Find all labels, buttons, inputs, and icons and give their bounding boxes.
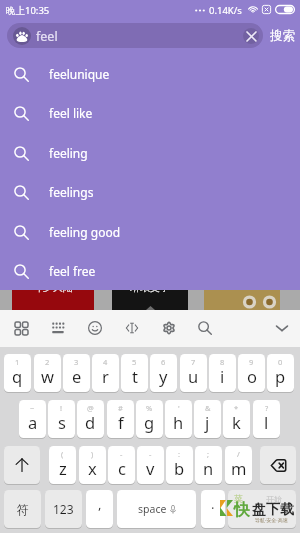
staticText: h: [173, 411, 184, 433]
staticText: 开始: [266, 494, 282, 504]
button[interactable]: 搜索: [266, 23, 298, 48]
staticText: 0.14K/s: [209, 4, 242, 17]
button[interactable]: Shift: [4, 446, 40, 484]
staticText: 斗罗大陆: [33, 281, 73, 294]
staticText: feelings: [49, 184, 94, 200]
button[interactable]: Keyboard: [44, 314, 72, 342]
button[interactable]: !: [48, 400, 75, 438]
staticText: k: [232, 411, 241, 433]
staticText: /: [237, 449, 240, 459]
button[interactable]: -: [108, 446, 135, 484]
button[interactable]: Search: [191, 314, 219, 342]
staticText: -: [149, 449, 152, 459]
button[interactable]: ): [79, 446, 106, 484]
button[interactable]: 1: [4, 354, 31, 392]
staticText: &: [205, 403, 211, 413]
staticText: d: [85, 411, 96, 433]
staticText: feeling: [49, 145, 88, 161]
staticText: 0: [278, 357, 283, 367]
staticText: 2: [45, 357, 50, 367]
button[interactable]: feeling good: [0, 212, 300, 252]
staticText: s: [58, 411, 66, 433]
staticText: f: [118, 411, 124, 433]
button[interactable]: 8: [209, 354, 236, 392]
staticText: feel like: [49, 105, 93, 121]
staticText: 9: [249, 357, 254, 367]
staticText: 盘下载: [252, 501, 294, 519]
button[interactable]: feeling: [0, 133, 300, 173]
button[interactable]: 符: [4, 490, 41, 528]
button[interactable]: feel free: [0, 251, 300, 291]
staticText: space: [138, 502, 167, 516]
staticText: l: [264, 411, 269, 433]
button[interactable]: Enter: [228, 490, 296, 528]
button[interactable]: Move cursor: [118, 314, 146, 342]
staticText: 搜索: [270, 28, 295, 44]
staticText: !: [60, 403, 63, 413]
staticText: ~: [30, 403, 35, 413]
button[interactable]: 6: [150, 354, 177, 392]
button[interactable]: 4: [92, 354, 119, 392]
button[interactable]: 3: [63, 354, 90, 392]
staticText: w: [41, 365, 54, 387]
button[interactable]: feelings: [0, 172, 300, 212]
button[interactable]: ;: [195, 446, 222, 484]
button[interactable]: Space: [117, 490, 196, 528]
button[interactable]: Hide keyboard: [268, 314, 296, 342]
staticText: -: [120, 449, 123, 459]
staticText: @: [87, 403, 94, 413]
button[interactable]: %: [136, 400, 163, 438]
staticText: p: [275, 365, 286, 387]
button[interactable]: 123: [45, 490, 82, 528]
button[interactable]: -: [137, 446, 164, 484]
staticText: 6: [161, 357, 166, 367]
staticText: 导航·安全·高速: [255, 517, 288, 524]
button[interactable]: &: [194, 400, 221, 438]
button[interactable]: *: [223, 400, 250, 438]
button[interactable]: Backspace: [260, 446, 296, 484]
button[interactable]: .: [201, 490, 225, 528]
staticText: i: [220, 365, 225, 387]
button[interactable]: :: [166, 446, 193, 484]
button[interactable]: ,: [86, 490, 113, 528]
button[interactable]: ~: [19, 400, 46, 438]
button[interactable]: 9: [238, 354, 265, 392]
button[interactable]: feel like: [0, 93, 300, 133]
button[interactable]: 7: [180, 354, 207, 392]
staticText: (: [61, 449, 64, 459]
button[interactable]: Emoji: [81, 314, 109, 342]
staticText: ): [91, 449, 94, 459]
staticText: e: [72, 365, 82, 387]
staticText: r: [102, 365, 109, 387]
button[interactable]: (: [49, 446, 76, 484]
button[interactable]: ?: [253, 400, 280, 438]
staticText: .: [211, 495, 215, 513]
button[interactable]: Apps: [7, 314, 35, 342]
button[interactable]: /: [225, 446, 252, 484]
staticText: c: [118, 457, 126, 479]
staticText: *: [234, 403, 239, 413]
staticText: ;: [207, 449, 210, 459]
staticText: #: [118, 403, 123, 413]
button[interactable]: feel: [7, 23, 263, 48]
button[interactable]: ': [165, 400, 192, 438]
button[interactable]: #: [107, 400, 134, 438]
staticText: 菜: [234, 493, 243, 504]
button[interactable]: Clear search: [243, 28, 259, 44]
button[interactable]: 5: [121, 354, 148, 392]
button[interactable]: Settings: [155, 314, 183, 342]
button[interactable]: feelunique: [0, 54, 300, 94]
staticText: 123: [53, 501, 74, 517]
staticText: 4: [103, 357, 108, 367]
staticText: %: [146, 403, 153, 413]
staticText: v: [146, 457, 155, 479]
staticText: 琳琅文学: [130, 281, 170, 294]
staticText: o: [247, 365, 257, 387]
button[interactable]: @: [77, 400, 104, 438]
staticText: 5: [132, 357, 137, 367]
staticText: 快: [234, 500, 250, 520]
staticText: feelunique: [49, 66, 110, 82]
staticText: q: [12, 365, 23, 387]
button[interactable]: 2: [34, 354, 61, 392]
button[interactable]: 0: [267, 354, 294, 392]
